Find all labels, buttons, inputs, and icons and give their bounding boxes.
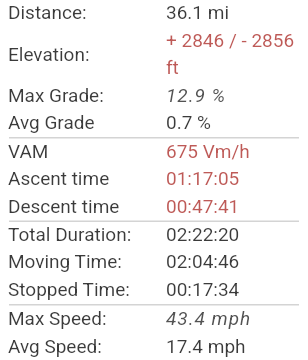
staticText: + 2846 / - 2856 <box>166 29 300 51</box>
button[interactable]: VAM <box>0 140 308 168</box>
staticText: 12.9 % <box>166 84 300 106</box>
button[interactable]: Avg Speed: <box>0 335 308 360</box>
button[interactable]: Avg Grade <box>0 111 308 140</box>
staticText: 675 Vm/h <box>166 140 300 162</box>
staticText: Max Speed: <box>8 307 166 329</box>
staticText: Max Grade: <box>8 84 166 106</box>
button[interactable]: Max Grade: <box>0 84 308 111</box>
button[interactable]: Max Speed: <box>0 307 308 335</box>
staticText: 43.4 mph <box>166 307 300 329</box>
button[interactable]: Elevation: <box>0 29 308 84</box>
staticText: Stopped Time: <box>8 278 166 300</box>
staticText: 36.1 mi <box>166 1 300 23</box>
staticText: 02:22:20 <box>166 223 300 245</box>
button[interactable]: Total Duration: <box>0 223 308 250</box>
staticText: Ascent time <box>8 167 166 189</box>
staticText: Total Duration: <box>8 223 166 245</box>
staticText: VAM <box>8 140 166 162</box>
staticText: 00:17:34 <box>166 278 300 300</box>
staticText: Distance: <box>8 1 166 23</box>
staticText: 02:04:46 <box>166 250 300 272</box>
staticText: ft <box>166 56 300 78</box>
staticText: Descent time <box>8 195 166 217</box>
button[interactable]: Descent time <box>0 195 308 223</box>
staticText: 00:47:41 <box>166 195 300 217</box>
staticText: 17.4 mph <box>166 335 300 357</box>
staticText: 01:17:05 <box>166 167 300 189</box>
staticText: Avg Speed: <box>8 335 166 357</box>
button[interactable]: Ascent time <box>0 167 308 195</box>
button[interactable]: Distance: <box>0 1 308 29</box>
staticText: Avg Grade <box>8 111 166 133</box>
staticText: Elevation: <box>8 43 166 65</box>
button[interactable]: Stopped Time: <box>0 278 308 307</box>
staticText: 0.7 % <box>166 111 300 133</box>
staticText: Moving Time: <box>8 250 166 272</box>
button[interactable]: Moving Time: <box>0 250 308 278</box>
